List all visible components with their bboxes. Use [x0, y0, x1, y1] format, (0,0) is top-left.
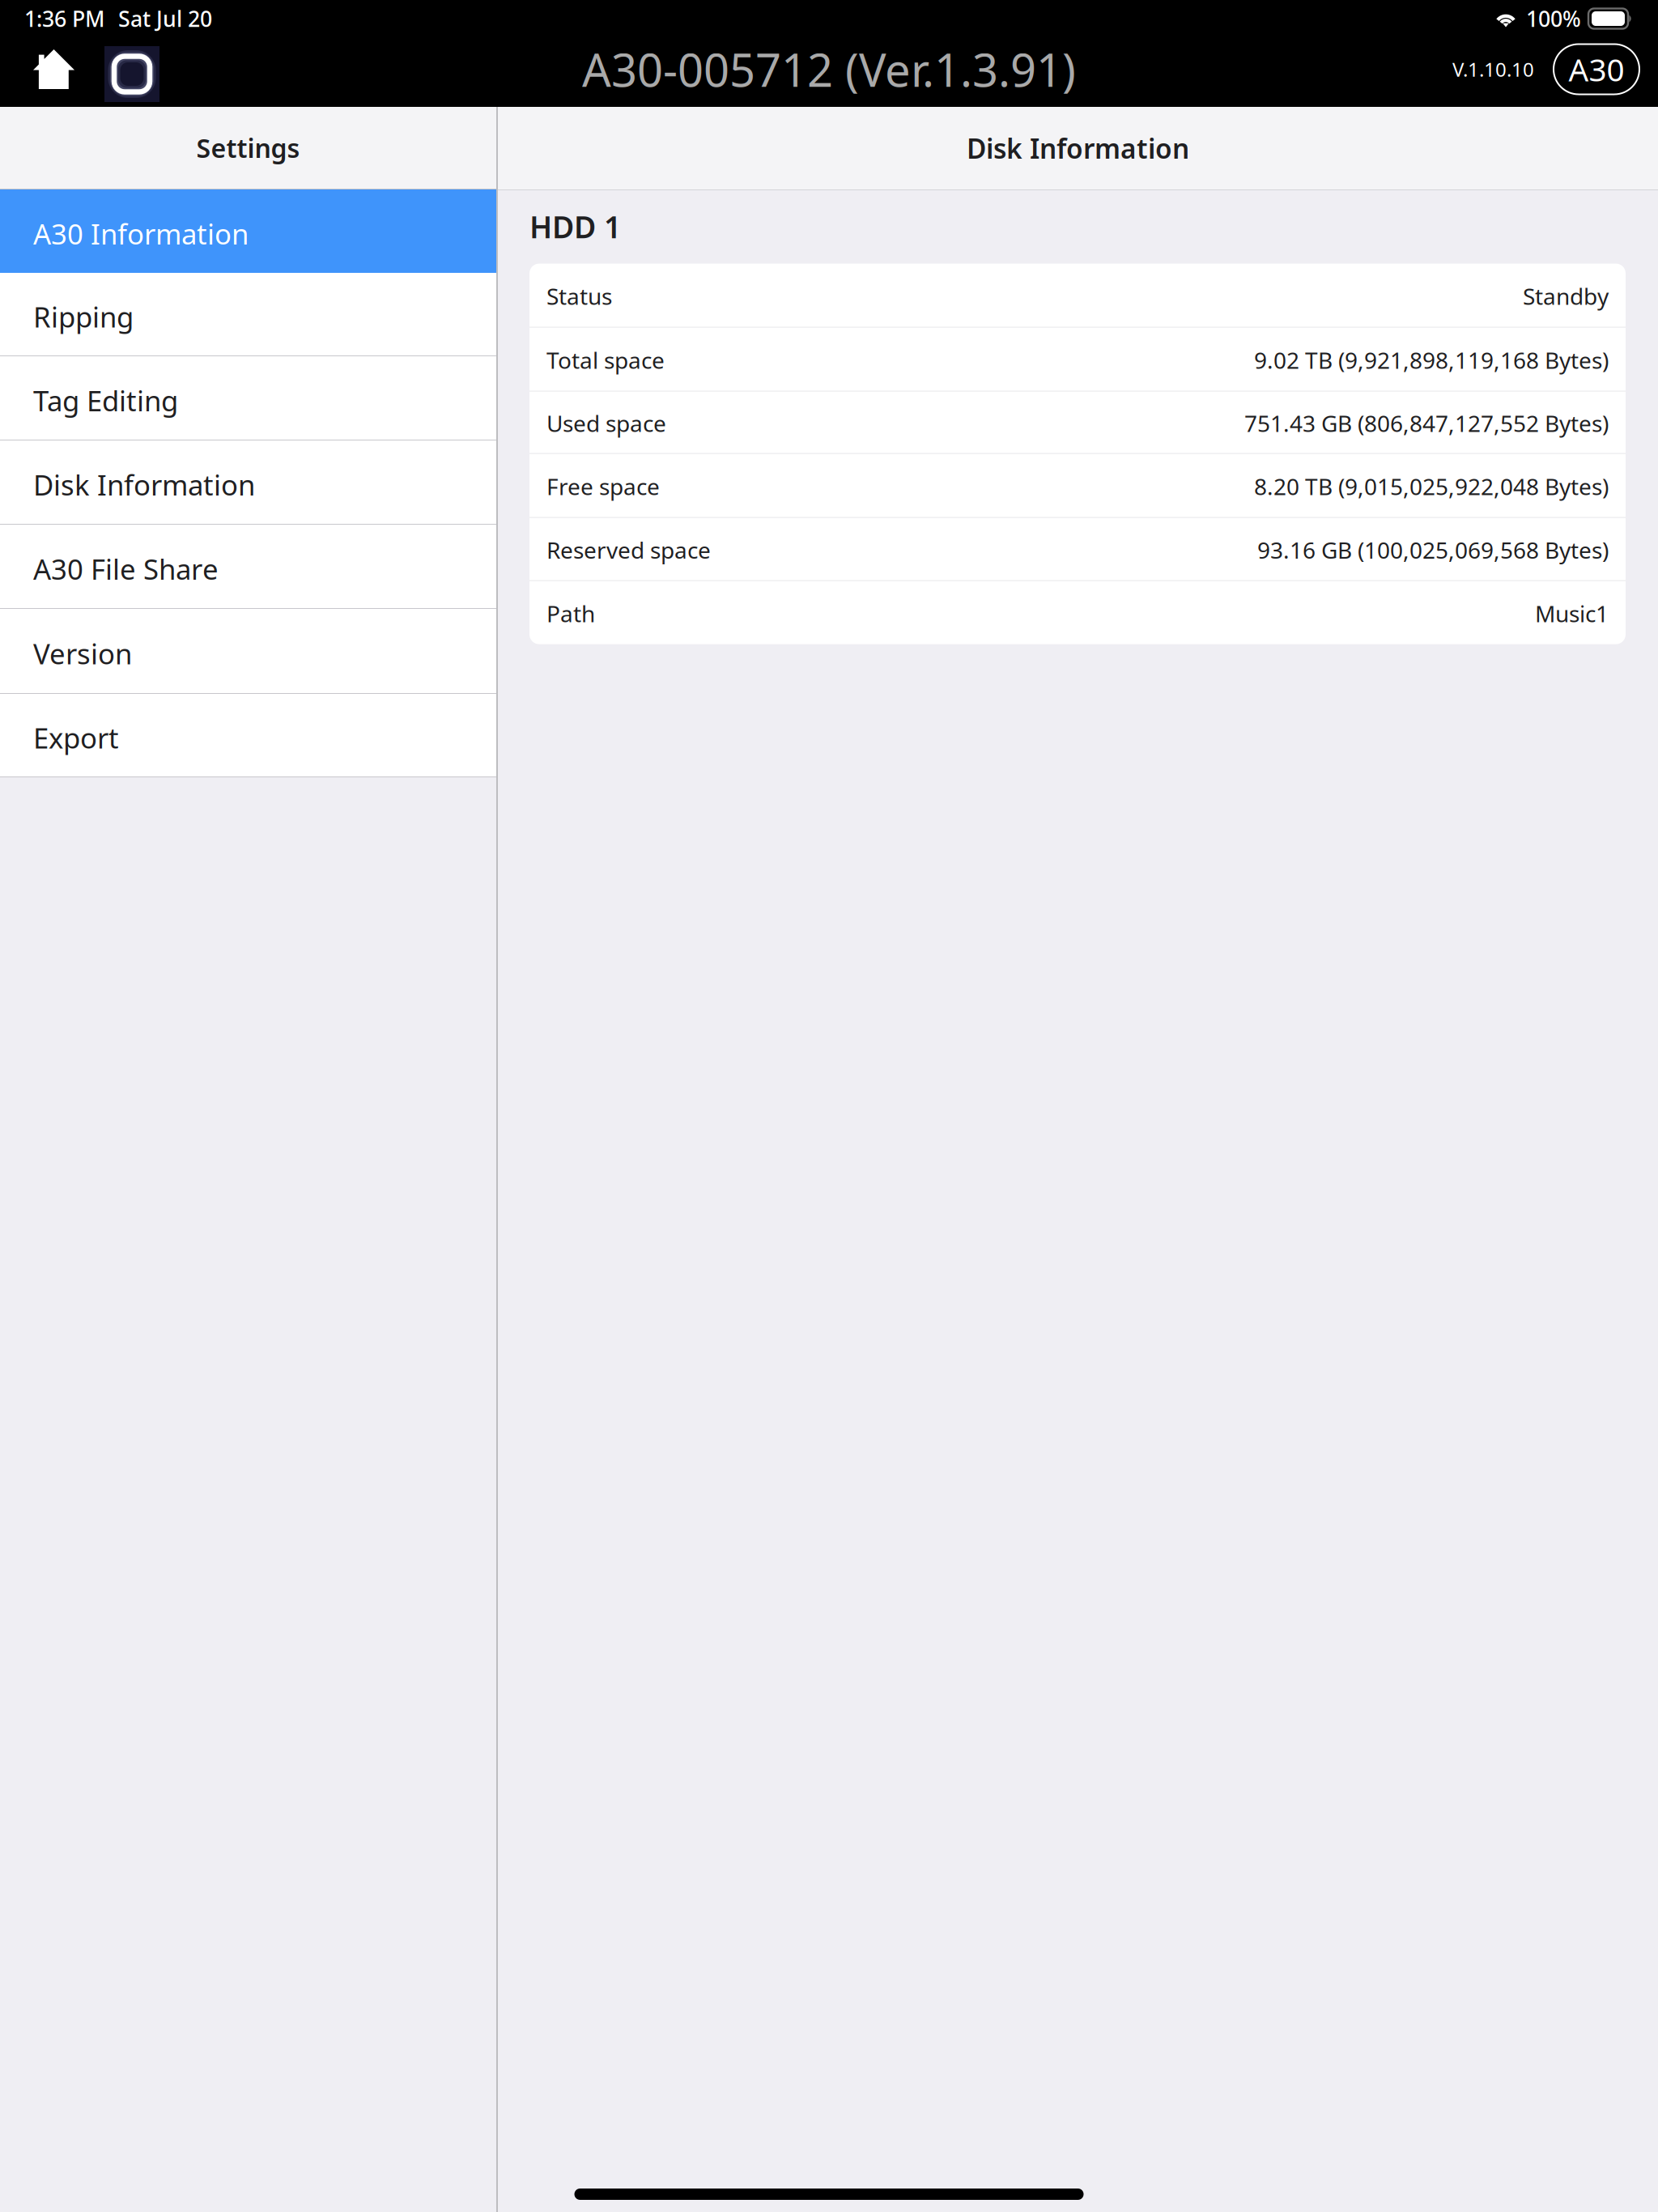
button[interactable]: Device [104, 41, 159, 97]
staticText: Path [546, 598, 595, 628]
staticText: Tag Editing [33, 382, 178, 419]
staticText: 8.20 TB (9,015,025,922,048 Bytes) [1254, 471, 1609, 501]
staticText: A30-005712 (Ver.1.3.91) [582, 39, 1076, 99]
staticText: Disk Information [967, 130, 1189, 166]
staticText: Export [33, 719, 119, 756]
button[interactable]: Disk Information [0, 440, 496, 525]
staticText: 9.02 TB (9,921,898,119,168 Bytes) [1254, 345, 1609, 375]
staticText: Music1 [1535, 598, 1609, 628]
staticText: Reserved space [546, 535, 711, 565]
staticText: A30 Information [33, 215, 249, 252]
staticText: Ripping [33, 298, 134, 335]
staticText: Standby [1523, 281, 1609, 311]
button[interactable]: A30 [1554, 44, 1639, 94]
staticText: Settings [196, 131, 300, 165]
staticText: 93.16 GB (100,025,069,568 Bytes) [1257, 535, 1609, 565]
staticText: Version [33, 635, 132, 672]
staticText: A30 [1569, 48, 1624, 90]
staticText: Total space [546, 345, 665, 375]
staticText: Status [546, 281, 612, 311]
staticText: Disk Information [33, 466, 255, 503]
staticText: Free space [546, 471, 660, 501]
staticText: 100% [1526, 4, 1581, 33]
staticText: 751.43 GB (806,847,127,552 Bytes) [1244, 408, 1609, 438]
staticText: HDD 1 [529, 206, 621, 247]
button[interactable]: A30 File Share [0, 525, 496, 609]
button[interactable]: A30 Information [0, 189, 496, 273]
staticText: 1:36 PM [24, 4, 104, 33]
staticText: A30 File Share [33, 550, 219, 587]
staticText: V.1.10.10 [1452, 56, 1534, 82]
button[interactable]: Home [33, 49, 74, 89]
button[interactable]: Version [0, 609, 496, 694]
button[interactable]: Export [0, 694, 496, 777]
button[interactable]: Tag Editing [0, 356, 496, 440]
staticText: Sat Jul 20 [118, 4, 212, 33]
button[interactable]: Ripping [0, 273, 496, 356]
staticText: Used space [546, 408, 666, 438]
